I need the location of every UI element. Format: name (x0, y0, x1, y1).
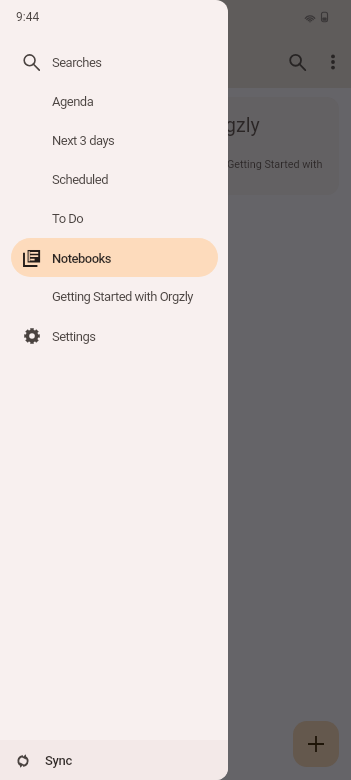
staticText: Settings (52, 329, 96, 344)
button[interactable]: Getting Started with Orgzly (12, 97, 339, 195)
staticText: Please reference Getting Started with (144, 158, 323, 171)
staticText: Agenda (52, 94, 94, 109)
button[interactable]: New note (293, 721, 339, 767)
staticText: Getting Started with Orgzly (52, 289, 193, 304)
button[interactable]: Agenda (11, 82, 218, 121)
staticText: Next 3 days (52, 133, 115, 148)
button[interactable]: Notebooks (11, 238, 218, 277)
button[interactable]: Searches (11, 43, 218, 82)
staticText: Searches (52, 55, 102, 70)
staticText: Sync (45, 753, 73, 768)
staticText: Notebooks (52, 251, 112, 266)
staticText: To Do (52, 211, 84, 226)
button[interactable]: Getting Started with Orgzly (11, 277, 218, 316)
button[interactable]: Search (279, 40, 315, 84)
button[interactable]: Scheduled (11, 160, 218, 199)
button[interactable]: Next 3 days (11, 121, 218, 160)
button[interactable]: More options (315, 40, 351, 84)
button[interactable]: Settings (11, 316, 218, 355)
button[interactable]: Sync (0, 740, 228, 780)
button[interactable]: To Do (11, 199, 218, 238)
staticText: 9:44 (16, 10, 40, 24)
staticText: Getting Started with Orgzly (28, 114, 260, 137)
staticText: Scheduled (52, 172, 108, 187)
